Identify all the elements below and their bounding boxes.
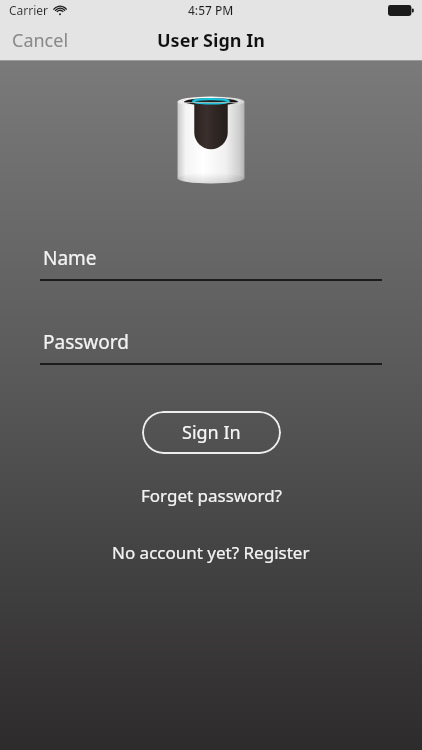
button[interactable]: Name xyxy=(40,245,382,281)
staticText: Forget password? xyxy=(141,484,282,507)
staticText: 4:57 PM xyxy=(188,2,234,18)
staticText: Password xyxy=(43,329,129,355)
button[interactable]: Cancel xyxy=(0,20,81,61)
button[interactable]: Forget password? xyxy=(127,477,296,514)
staticText: User Sign In xyxy=(157,28,265,53)
staticText: Cancel xyxy=(12,28,69,53)
staticText: Name xyxy=(43,245,97,271)
button[interactable]: Sign In xyxy=(142,411,281,454)
staticText: Carrier xyxy=(9,2,49,18)
staticText: Sign In xyxy=(182,420,241,445)
button[interactable]: Password xyxy=(40,329,382,365)
button[interactable]: No account yet? Register xyxy=(98,534,324,571)
staticText: No account yet? Register xyxy=(112,541,310,564)
